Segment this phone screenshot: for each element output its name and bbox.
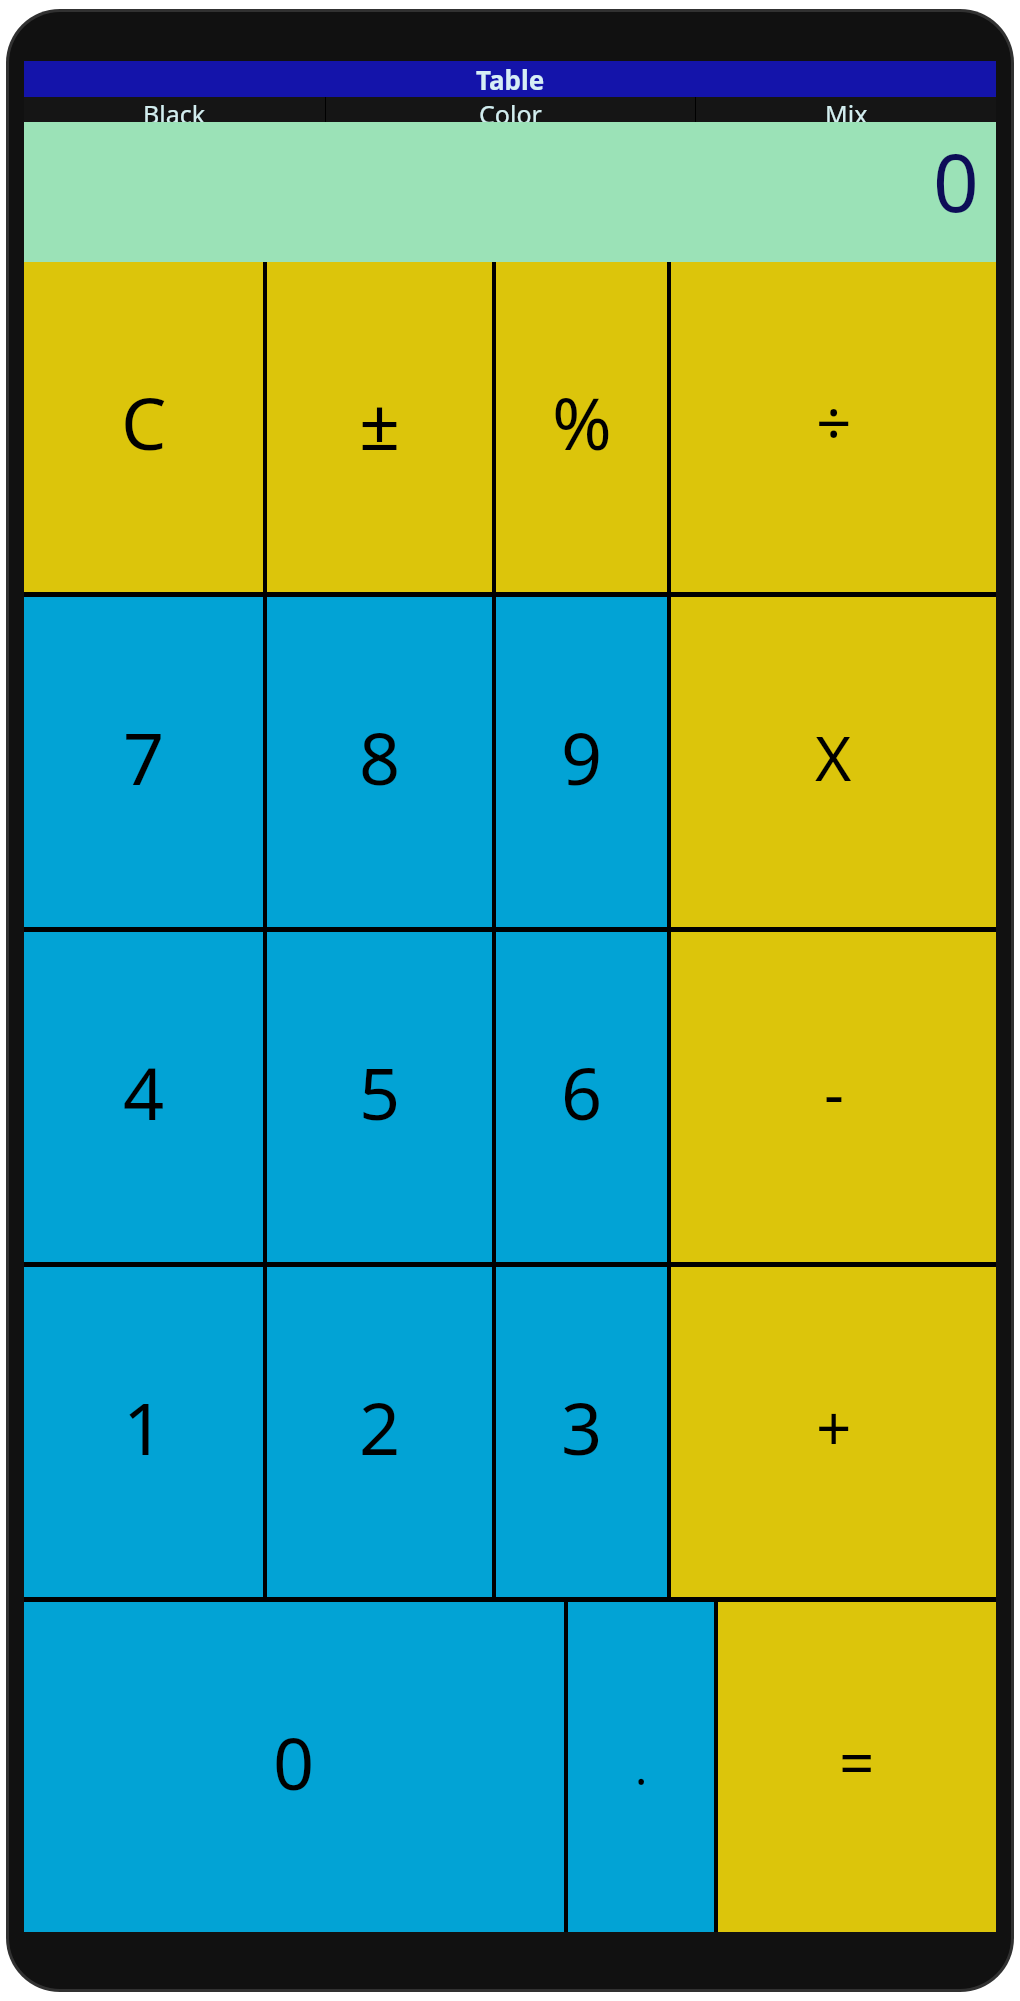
button[interactable]: 7 bbox=[24, 597, 263, 927]
staticText: 2 bbox=[359, 1378, 401, 1476]
button[interactable]: Minus bbox=[671, 932, 996, 1262]
staticText: Black bbox=[143, 97, 206, 122]
button[interactable]: Multiply bbox=[671, 597, 996, 927]
staticText: = bbox=[839, 1720, 875, 1804]
button[interactable]: . bbox=[568, 1602, 714, 1932]
staticText: 5 bbox=[359, 1043, 401, 1141]
button[interactable]: 4 bbox=[24, 932, 263, 1262]
button[interactable]: 3 bbox=[496, 1267, 667, 1597]
staticText: ÷ bbox=[816, 380, 852, 464]
button[interactable]: 1 bbox=[24, 1267, 263, 1597]
button[interactable]: Color bbox=[326, 97, 695, 122]
button[interactable]: 5 bbox=[267, 932, 492, 1262]
staticText: 6 bbox=[561, 1043, 603, 1141]
staticText: 8 bbox=[359, 708, 401, 806]
staticText: 9 bbox=[561, 708, 603, 806]
button[interactable]: 0 bbox=[24, 1602, 564, 1932]
staticText: 1 bbox=[123, 1378, 165, 1476]
staticText: 3 bbox=[561, 1378, 603, 1476]
button[interactable]: 8 bbox=[267, 597, 492, 927]
staticText: 7 bbox=[123, 708, 165, 806]
staticText: 0 bbox=[273, 1713, 315, 1811]
staticText: Color bbox=[479, 97, 542, 122]
staticText: . bbox=[635, 1736, 648, 1799]
staticText: Mix bbox=[825, 97, 868, 122]
button[interactable]: ± bbox=[267, 262, 492, 592]
staticText: X bbox=[815, 715, 852, 799]
button[interactable]: C bbox=[24, 262, 263, 592]
button[interactable]: Divide bbox=[671, 262, 996, 592]
staticText: 4 bbox=[123, 1043, 165, 1141]
staticText: Table bbox=[476, 62, 545, 97]
staticText: C bbox=[121, 373, 167, 471]
button[interactable]: % bbox=[496, 262, 667, 592]
button[interactable]: Plus bbox=[671, 1267, 996, 1597]
button[interactable]: 9 bbox=[496, 597, 667, 927]
staticText: - bbox=[824, 1050, 844, 1134]
staticText: 0 bbox=[933, 126, 979, 235]
button[interactable]: 2 bbox=[267, 1267, 492, 1597]
staticText: + bbox=[816, 1385, 852, 1469]
button[interactable]: 6 bbox=[496, 932, 667, 1262]
staticText: % bbox=[552, 373, 612, 471]
button[interactable]: Mix bbox=[696, 97, 996, 122]
staticText: ± bbox=[359, 373, 401, 471]
button[interactable]: Black bbox=[24, 97, 325, 122]
button[interactable]: Equals bbox=[718, 1602, 996, 1932]
